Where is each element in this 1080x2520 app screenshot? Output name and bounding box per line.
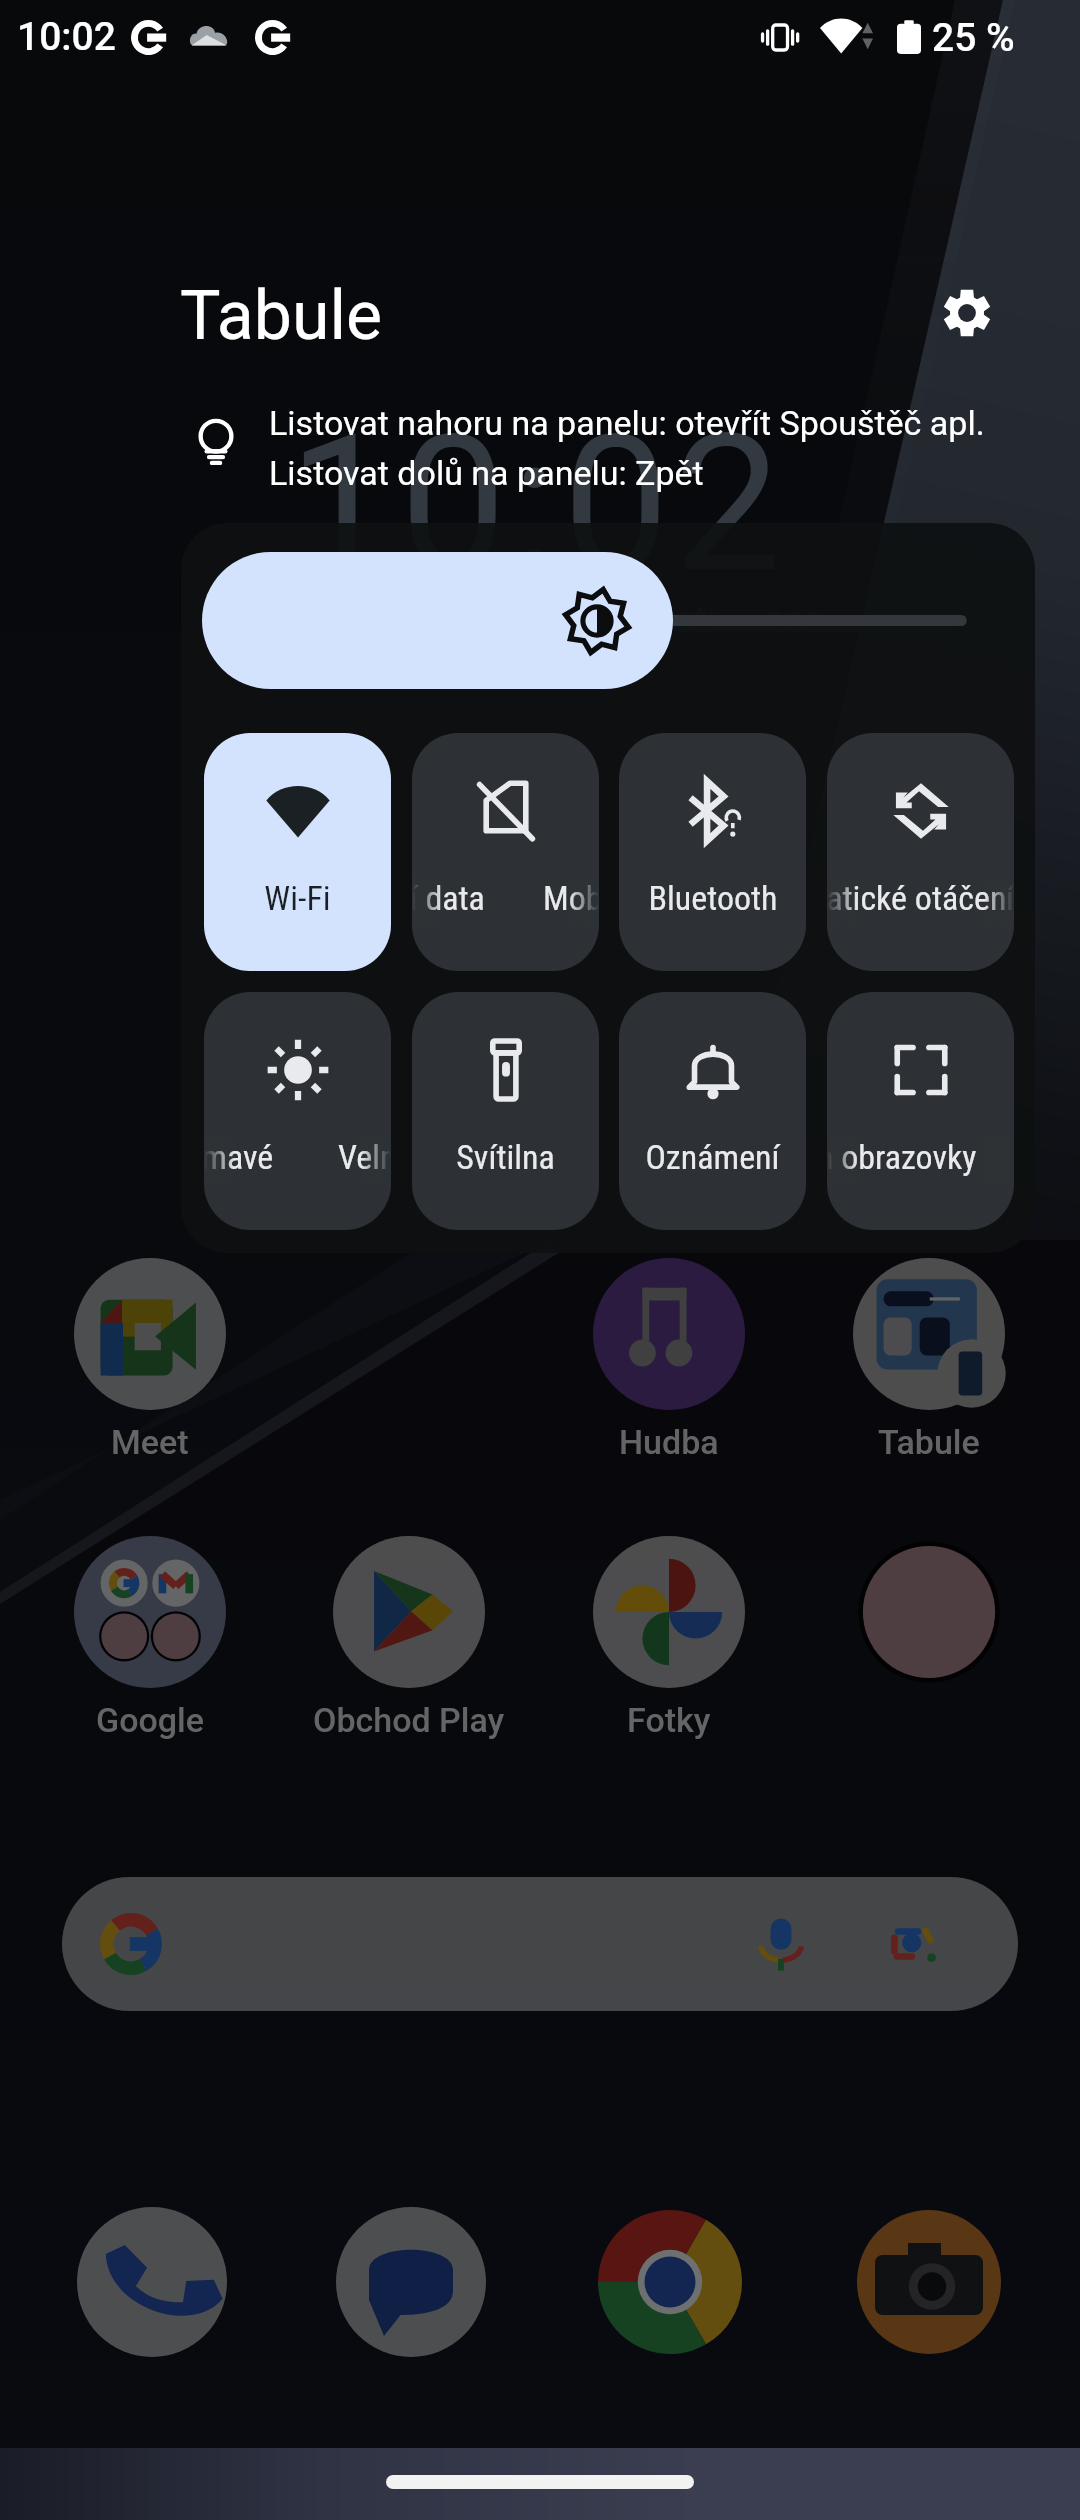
staticText: Mobilní data <box>412 878 485 918</box>
staticText: Listovat dolů na panelu: Zpět <box>269 453 704 493</box>
button[interactable]: Google <box>30 1536 270 1736</box>
staticText: Hudba <box>619 1422 719 1462</box>
staticText: Svítilna <box>456 1137 555 1177</box>
staticText: Google <box>96 1700 204 1740</box>
button[interactable]: Wi-Fi <box>204 733 391 971</box>
button[interactable]: Brightness <box>202 552 1014 689</box>
button[interactable]: App <box>809 1536 1049 1736</box>
button[interactable]: Automatické otáčení <box>827 733 1014 971</box>
staticText: 25 % <box>932 15 1015 61</box>
staticText: Wi-Fi <box>264 878 331 918</box>
button[interactable]: Phone <box>62 2192 242 2372</box>
button[interactable]: Settings <box>911 257 1023 369</box>
button[interactable]: Mobilní data <box>412 733 599 971</box>
button[interactable]: Home <box>386 2475 694 2489</box>
button[interactable]: Fotky <box>549 1536 789 1736</box>
button[interactable]: Search <box>62 1877 1018 2011</box>
staticText: Meet <box>111 1422 189 1462</box>
button[interactable]: Chrome <box>580 2192 760 2372</box>
staticText: Bluetooth <box>648 878 778 918</box>
staticText: 10:02 <box>17 14 116 60</box>
staticText: Záznam obrazovky <box>827 1137 977 1177</box>
staticText: Mobilní data <box>543 878 599 918</box>
button[interactable]: Camera <box>839 2192 1019 2372</box>
button[interactable]: Oznámení <box>619 992 806 1230</box>
button[interactable]: Obchod Play <box>289 1536 529 1736</box>
staticText: 10:02 <box>288 393 787 616</box>
button[interactable]: Hudba <box>549 1258 789 1458</box>
staticText: Tabule <box>180 276 383 356</box>
button[interactable]: Bluetooth <box>619 733 806 971</box>
staticText: Obchod Play <box>313 1700 505 1740</box>
staticText: Fotky <box>627 1700 711 1740</box>
staticText: Oznámení <box>645 1137 780 1177</box>
button[interactable]: Záznam obrazovky <box>827 992 1014 1230</box>
staticText: Automatické otáčení <box>827 878 1014 918</box>
button[interactable]: Svítilna <box>412 992 599 1230</box>
staticText: Velmi tmavé <box>204 1137 274 1177</box>
button[interactable]: Velmi tmavé <box>204 992 391 1230</box>
staticText: Velmi tmavé <box>338 1137 391 1177</box>
button[interactable]: Meet <box>30 1258 270 1458</box>
button[interactable]: Tabule <box>809 1258 1049 1458</box>
staticText: Tabule <box>878 1422 980 1462</box>
button[interactable]: Messages <box>321 2192 501 2372</box>
staticText: Listovat nahoru na panelu: otevřít Spouš… <box>269 403 985 443</box>
staticText: Nastavení hlasitosti — nce <box>392 598 823 641</box>
